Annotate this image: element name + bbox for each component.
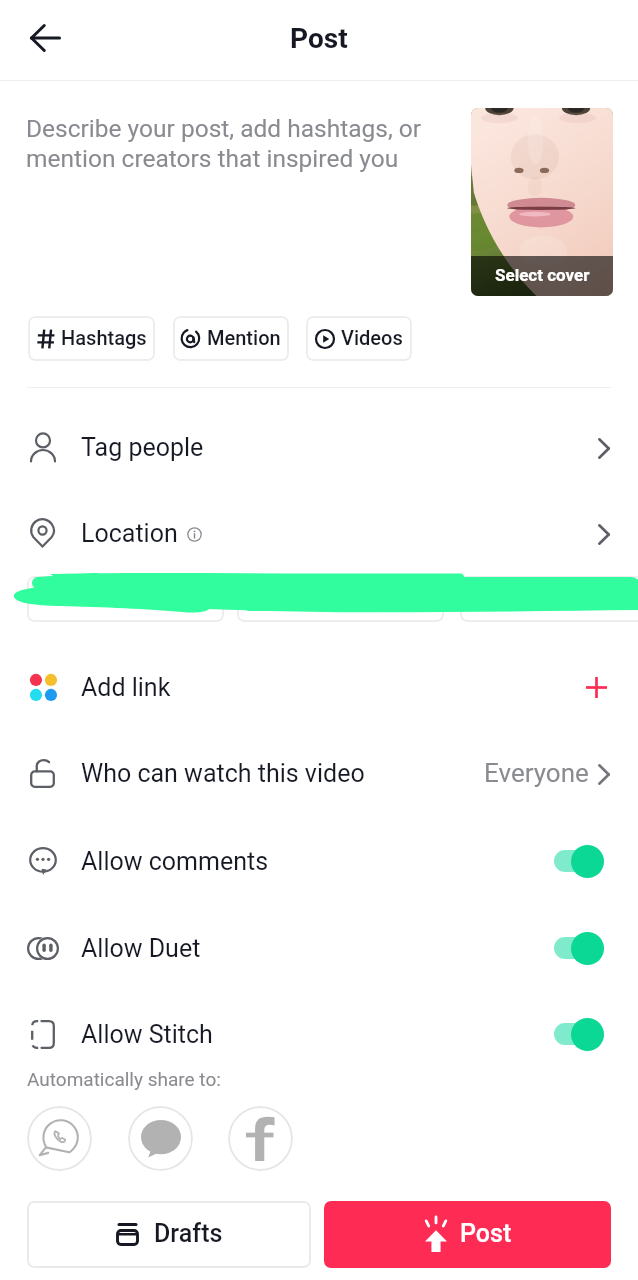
button[interactable]: Select cover	[471, 108, 613, 296]
staticText: Location	[81, 519, 178, 548]
staticText: Tag people	[81, 433, 204, 462]
staticText: Post	[290, 22, 348, 55]
staticText: Hashtags	[61, 326, 147, 349]
button[interactable]: Allow comments	[554, 841, 605, 881]
button[interactable]: Allow comments	[0, 818, 638, 904]
button[interactable]: Allow Stitch	[0, 991, 638, 1077]
button[interactable]: Drafts	[27, 1201, 311, 1268]
button[interactable]	[460, 576, 638, 622]
button[interactable]	[27, 576, 224, 622]
button[interactable]: Allow Duet	[0, 905, 638, 991]
button[interactable]: Facebook	[228, 1106, 293, 1171]
button[interactable]: Allow Stitch	[554, 1014, 605, 1054]
staticText: Allow Stitch	[81, 1020, 213, 1049]
staticText: Describe your post, add hashtags, or men…	[26, 114, 422, 173]
button[interactable]: Post	[324, 1201, 611, 1268]
button[interactable]: Tag people	[0, 404, 638, 490]
staticText: Videos	[341, 326, 403, 349]
button[interactable]: Allow Duet	[554, 928, 605, 968]
button[interactable]: Add link	[0, 644, 638, 730]
staticText: Automatically share to:	[27, 1068, 221, 1090]
button[interactable]: Add link	[574, 665, 618, 709]
button[interactable]: Who can watch this video	[0, 730, 638, 816]
staticText: Allow Duet	[81, 934, 201, 963]
staticText: Mention	[207, 326, 281, 349]
button[interactable]: Hashtags	[28, 316, 155, 361]
staticText: Drafts	[154, 1219, 223, 1248]
button[interactable]	[237, 576, 444, 622]
staticText: Add link	[81, 673, 171, 702]
staticText: Who can watch this video	[81, 759, 365, 788]
button[interactable]: Mention	[173, 316, 289, 361]
button[interactable]: Messages	[128, 1106, 193, 1171]
button[interactable]: WhatsApp	[27, 1106, 92, 1171]
staticText: Select cover	[495, 265, 590, 285]
staticText: Everyone	[484, 758, 589, 788]
button[interactable]: Back	[16, 9, 74, 67]
button[interactable]: Location	[0, 490, 638, 576]
button[interactable]: Videos	[306, 316, 412, 361]
staticText: Post	[460, 1219, 512, 1248]
staticText: Allow comments	[81, 847, 269, 876]
